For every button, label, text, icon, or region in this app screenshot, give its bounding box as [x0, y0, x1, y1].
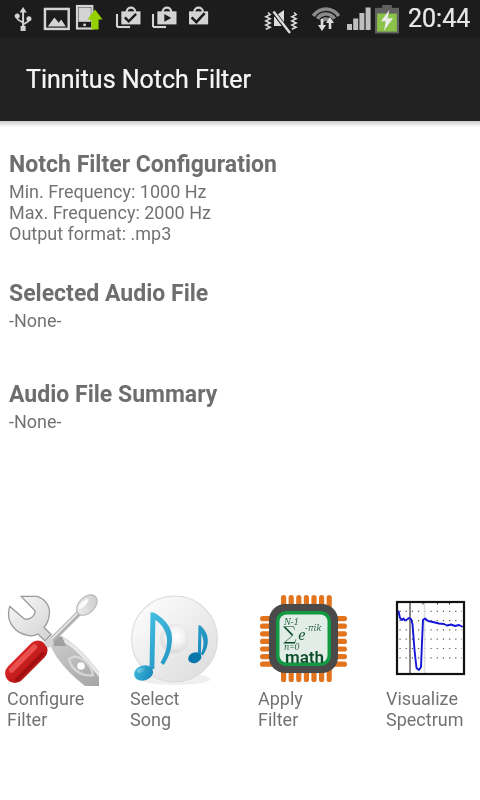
staticText: Audio File Summary — [9, 381, 218, 408]
staticText: e — [298, 624, 306, 644]
button[interactable]: Apply Filter — [258, 593, 378, 730]
staticText: Tinnitus Notch Filter — [26, 65, 251, 94]
staticText: 20:44 — [408, 4, 471, 33]
staticText: Selected Audio File — [9, 280, 209, 307]
staticText: Configure Filter — [7, 688, 85, 730]
other: Visualize Spectrum — [386, 593, 477, 684]
staticText: −πik — [305, 621, 322, 633]
staticText: n=0 — [284, 640, 300, 652]
staticText: Notch Filter Configuration — [9, 151, 277, 178]
other: Configure Filter — [7, 593, 98, 684]
button[interactable]: Tinnitus Notch Filter — [0, 38, 480, 121]
staticText: ∑ — [283, 622, 297, 644]
staticText: Output format: .mp3 — [9, 223, 172, 244]
staticText: N−1 — [284, 615, 299, 627]
staticText: -None- — [9, 411, 62, 432]
other: Apply Filter — [258, 593, 349, 684]
staticText: Max. Frequency: 2000 Hz — [9, 202, 211, 223]
staticText: Visualize Spectrum — [386, 688, 464, 730]
button[interactable]: Select Song — [130, 593, 248, 730]
other: Select Song — [130, 593, 221, 684]
button[interactable]: Visualize Spectrum — [386, 593, 480, 730]
staticText: math — [285, 647, 325, 667]
button[interactable]: Configure Filter — [7, 593, 130, 730]
staticText: -None- — [9, 310, 62, 331]
staticText: Apply Filter — [258, 688, 303, 730]
staticText: Min. Frequency: 1000 Hz — [9, 181, 207, 202]
staticText: Select Song — [130, 688, 180, 730]
